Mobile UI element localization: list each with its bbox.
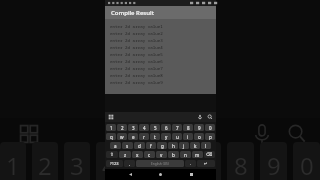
staticText: l [205, 143, 207, 149]
button[interactable]: n [180, 151, 191, 158]
staticText: 8 [234, 149, 248, 180]
staticText: v [160, 152, 163, 158]
button[interactable]: ?123 [106, 160, 123, 167]
staticText: enter 2d array value4 [110, 45, 163, 51]
staticText: enter 2d array value6 [110, 59, 163, 65]
button[interactable]: 1 [106, 124, 116, 131]
staticText: d [138, 143, 141, 149]
staticText: j [183, 143, 185, 149]
staticText: 5 [154, 125, 157, 131]
staticText: 2 [38, 149, 52, 180]
button[interactable]: p [205, 133, 215, 140]
staticText: 4 [102, 149, 116, 180]
staticText: a [114, 143, 117, 149]
staticText: 6 [165, 125, 168, 131]
button[interactable]: ⌫ [204, 151, 215, 158]
button[interactable]: a [110, 142, 121, 149]
button[interactable]: t [150, 133, 160, 140]
button[interactable]: 9 [194, 124, 204, 131]
staticText: s [126, 143, 129, 149]
button[interactable]: Space [136, 160, 184, 167]
button[interactable]: 6 [161, 124, 171, 131]
staticText: w [120, 134, 124, 140]
button[interactable]: 0 [205, 124, 215, 131]
button[interactable]: 3 [128, 124, 138, 131]
staticText: o [198, 134, 201, 140]
staticText: enter 2d array value1 [110, 24, 163, 30]
staticText: 0 [209, 125, 212, 131]
button[interactable]: v [156, 151, 167, 158]
button[interactable]: l [201, 142, 211, 149]
button[interactable]: . [185, 160, 196, 167]
staticText: ⌫ [206, 152, 213, 157]
staticText: i [187, 134, 189, 140]
button[interactable]: Clipboard [108, 114, 114, 120]
button[interactable]: r [139, 133, 149, 140]
staticText: 5 [135, 149, 149, 180]
staticText: Compile Result [111, 9, 154, 17]
staticText: n [184, 152, 187, 158]
staticText: enter 2d array value2 [110, 31, 163, 37]
button[interactable]: k [190, 142, 200, 149]
staticText: 1 [6, 149, 20, 180]
staticText: enter 2d array value5 [110, 52, 163, 58]
staticText: 3 [70, 149, 84, 180]
button[interactable]: s [122, 142, 133, 149]
staticText: f [150, 143, 152, 149]
staticText: z [124, 152, 127, 158]
button[interactable]: 5 [150, 124, 160, 131]
button[interactable]: b [168, 151, 179, 158]
button[interactable]: q [106, 133, 116, 140]
button[interactable]: 2 [117, 124, 127, 131]
button[interactable]: x [132, 151, 143, 158]
staticText: 2 [121, 125, 124, 131]
staticText: 3 [132, 125, 135, 131]
staticText: 4 [143, 125, 146, 131]
button[interactable]: , [124, 160, 135, 167]
button[interactable]: c [144, 151, 155, 158]
staticText: 8 [187, 125, 190, 131]
button[interactable]: ↵ [197, 160, 215, 167]
button[interactable]: i [183, 133, 193, 140]
staticText: , [129, 161, 131, 166]
staticText: 1 [110, 125, 113, 131]
staticText: ?123 [110, 161, 119, 166]
staticText: 7 [176, 125, 179, 131]
staticText: c [148, 152, 151, 158]
button[interactable]: g [157, 142, 167, 149]
button[interactable]: 7 [172, 124, 182, 131]
button[interactable]: Voice input [197, 114, 203, 120]
staticText: g [161, 143, 164, 149]
button[interactable]: y [161, 133, 171, 140]
button[interactable]: ⇧ [106, 151, 118, 158]
staticText: t [154, 134, 156, 140]
button[interactable]: Compile Result [105, 6, 216, 19]
button[interactable]: e [128, 133, 138, 140]
button[interactable]: o [194, 133, 204, 140]
button[interactable]: 8 [183, 124, 193, 131]
button[interactable]: z [119, 151, 131, 158]
staticText: 0 [300, 149, 314, 180]
button[interactable]: h [168, 142, 178, 149]
staticText: . [190, 161, 192, 166]
button[interactable]: f [146, 142, 156, 149]
button[interactable]: Home [155, 169, 166, 180]
staticText: English (US) [151, 162, 169, 166]
button[interactable]: 4 [139, 124, 149, 131]
staticText: m [195, 152, 200, 158]
staticText: e [132, 134, 135, 140]
staticText: b [172, 152, 175, 158]
button[interactable]: d [134, 142, 145, 149]
staticText: r [143, 134, 145, 140]
staticText: h [172, 143, 175, 149]
button[interactable]: m [192, 151, 203, 158]
staticText: ↵ [204, 161, 208, 166]
button[interactable]: w [117, 133, 127, 140]
button[interactable]: j [179, 142, 189, 149]
button[interactable]: Search [207, 114, 213, 120]
button[interactable]: Recent apps [186, 169, 197, 180]
button[interactable]: u [172, 133, 182, 140]
staticText: enter 2d array value9 [110, 80, 163, 86]
staticText: p [209, 134, 212, 140]
button[interactable]: Back [125, 169, 136, 180]
